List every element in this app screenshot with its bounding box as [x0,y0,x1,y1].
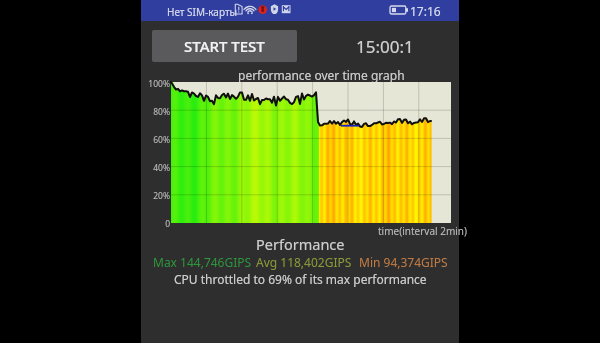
staticText: 0 [141,218,170,230]
staticText: 60% [141,134,170,146]
staticText: 40% [141,162,170,174]
staticText: Performance [256,234,345,254]
staticText: 15:00:1 [356,35,414,58]
staticText: performance over time graph [238,67,405,83]
staticText: CPU throttled to 69% of its max performa… [174,271,427,287]
staticText: Avg 118,402GIPS [256,254,352,270]
staticText: 17:16 [410,3,441,19]
staticText: 80% [141,106,170,118]
button[interactable]: START TEST [152,30,297,62]
staticText: Min 94,374GIPS [359,254,448,270]
staticText: Max 144,746GIPS [153,254,252,270]
staticText: START TEST [184,36,265,56]
staticText: 100% [141,78,170,90]
staticText: 20% [141,190,170,202]
staticText: time(interval 2min) [378,224,468,238]
staticText: Нет SIM-карты [167,5,238,19]
